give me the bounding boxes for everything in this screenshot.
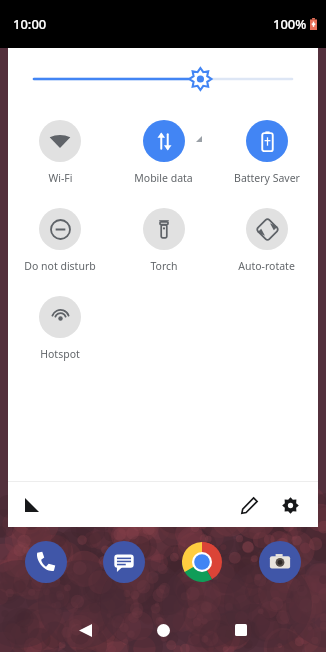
button[interactable]: Hotspot [8,286,112,374]
button[interactable]: Auto-rotate [215,198,318,286]
button[interactable]: Camera [259,541,301,583]
staticText: Auto-rotate [238,259,295,273]
button[interactable]: Torch [112,198,215,286]
button[interactable]: Edit tiles [233,489,265,521]
button[interactable]: Do not disturb [8,198,112,286]
staticText: 100% [273,15,307,33]
button[interactable]: Battery Saver [215,110,318,198]
button[interactable]: Home [134,608,192,652]
button[interactable]: Recents [212,608,270,652]
staticText: Wi-Fi [48,171,73,185]
button[interactable]: Back [56,608,114,652]
button[interactable]: Wi-Fi [8,110,112,198]
staticText: 10:00 [13,15,47,33]
staticText: Do not disturb [24,259,96,273]
button[interactable]: Phone [25,541,67,583]
button[interactable]: Mobile data [112,110,215,198]
button[interactable]: Messages [103,541,145,583]
button[interactable]: Settings [274,489,306,521]
staticText: Mobile data [134,171,193,185]
staticText: Torch [150,259,178,273]
button[interactable]: Chrome [181,541,223,583]
staticText: Hotspot [40,347,80,361]
button[interactable]: Signal status [14,487,50,523]
button[interactable]: Brightness [8,48,318,110]
staticText: Battery Saver [234,171,300,185]
